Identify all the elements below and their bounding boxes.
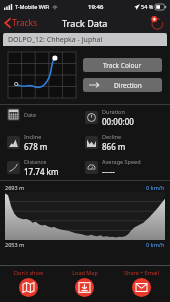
staticText: 19:46 [88,3,104,11]
staticText: Direction [114,81,142,90]
staticText: 17.74 km [24,166,59,177]
button[interactable]: Duration [85,108,163,127]
button[interactable]: Add track [149,15,165,31]
button[interactable]: Incline [7,133,85,152]
button[interactable]: Map preview [8,52,76,98]
staticText: 54 % [141,3,154,10]
staticText: Track Data [62,17,108,29]
button[interactable]: Direction [83,78,162,92]
button[interactable]: Tracks [3,15,39,31]
staticText: Don't show [14,269,43,276]
staticText: DOLPO_12: Chhepka - Juphal [8,35,103,45]
staticText: Share + Email [124,269,159,276]
button[interactable]: Average Speed [85,158,163,177]
staticText: T-Mobile WiFi [15,3,50,10]
staticText: Incline [24,133,42,140]
button[interactable]: Share + Email [113,266,170,302]
staticText: Distance [24,158,47,165]
staticText: 678 m [24,141,48,152]
staticText: 2053 m [5,241,25,248]
button[interactable]: Elevation profile [5,192,165,240]
staticText: 0 km/h [146,184,165,191]
staticText: Average Speed [102,158,141,165]
staticText: Duration [102,108,125,115]
button[interactable]: Decline [85,133,163,152]
staticText: 866 m [102,141,126,152]
staticText: Load Map [72,269,98,276]
button[interactable]: Distance [7,158,85,177]
staticText: 0 km/h [146,241,165,248]
staticText: Tracks [12,17,38,29]
staticText: Decline [102,133,122,140]
staticText: Track Colour [103,61,142,70]
button[interactable]: Don't show [0,266,56,302]
button[interactable]: Load Map [56,266,113,302]
staticText: 2693 m [5,184,25,191]
staticText: ----- [102,166,115,177]
staticText: Date [24,111,37,118]
button[interactable]: DOLPO_12: Chhepka - Juphal [3,33,167,46]
staticText: 00:00:00 [102,116,134,127]
button[interactable]: Date [7,108,85,121]
button[interactable]: Track Colour [83,58,162,72]
